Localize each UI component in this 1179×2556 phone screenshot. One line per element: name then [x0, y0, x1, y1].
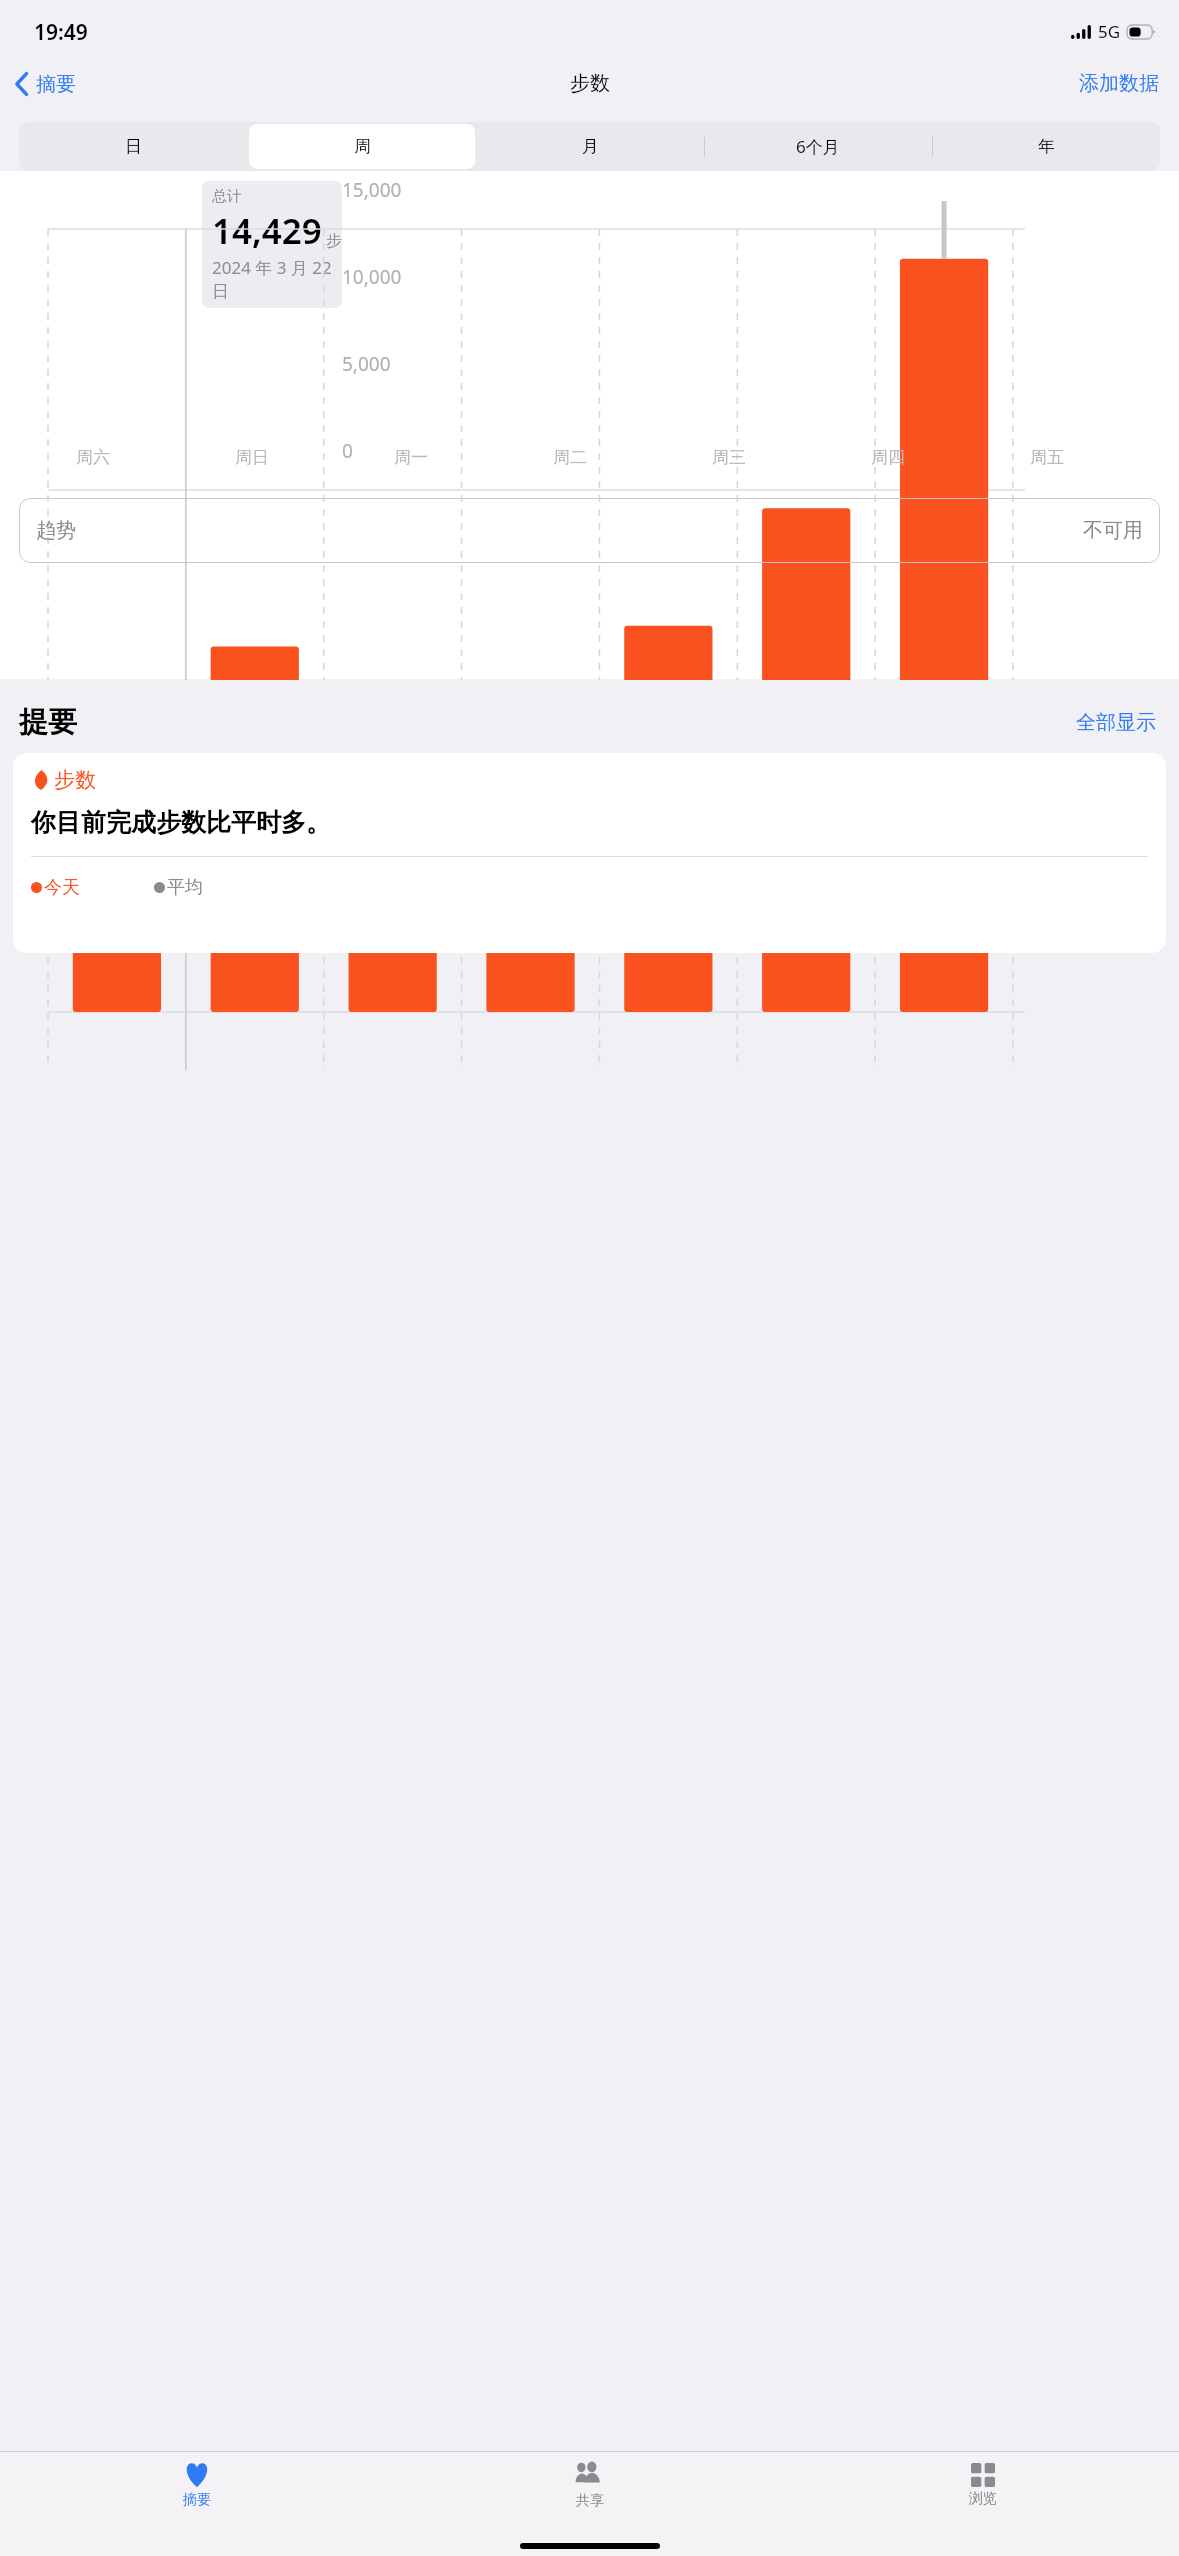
- staticText: 添加数据: [1079, 71, 1159, 96]
- staticText: 5G: [1098, 20, 1121, 43]
- staticText: 周五: [1030, 447, 1064, 468]
- staticText: 你目前完成步数比平时多。: [31, 807, 331, 838]
- staticText: 步: [326, 231, 332, 251]
- staticText: 平均: [167, 876, 203, 899]
- button[interactable]: 共享: [393, 2452, 786, 2518]
- staticText: 0: [342, 438, 353, 464]
- staticText: 2024 年 3 月 22 日: [212, 256, 332, 302]
- staticText: 14,429: [212, 207, 322, 255]
- button[interactable]: 摘要: [0, 67, 86, 101]
- staticText: 周三: [712, 447, 746, 468]
- staticText: 周六: [76, 447, 110, 468]
- button[interactable]: 全部显示: [1072, 706, 1160, 739]
- button[interactable]: 日: [19, 122, 248, 171]
- staticText: 10,000: [342, 264, 402, 290]
- staticText: 日: [125, 136, 142, 157]
- button[interactable]: 年: [932, 122, 1160, 171]
- staticText: 共享: [576, 2492, 604, 2510]
- staticText: 周: [354, 136, 371, 157]
- staticText: 5,000: [342, 351, 391, 377]
- staticText: 摘要: [183, 2491, 211, 2509]
- staticText: 提要: [19, 704, 77, 741]
- staticText: 不可用: [1083, 518, 1143, 543]
- staticText: 全部显示: [1076, 710, 1156, 735]
- staticText: 总计: [212, 187, 242, 206]
- staticText: 15,000: [342, 177, 402, 203]
- button[interactable]: 月: [476, 122, 704, 171]
- button[interactable]: 趋势: [19, 498, 1160, 563]
- staticText: 周二: [553, 447, 587, 468]
- staticText: 19:49: [34, 18, 88, 47]
- button[interactable]: 6个月: [704, 122, 932, 171]
- staticText: 6个月: [796, 135, 840, 158]
- button[interactable]: 周: [248, 122, 476, 171]
- button[interactable]: 步数: [13, 753, 1166, 953]
- staticText: 月: [582, 136, 599, 157]
- staticText: 步数: [570, 71, 610, 96]
- button[interactable]: 摘要: [0, 2452, 393, 2518]
- staticText: 周四: [871, 447, 905, 468]
- staticText: 步数: [54, 767, 96, 793]
- button[interactable]: 浏览: [786, 2452, 1179, 2518]
- staticText: 趋势: [36, 518, 76, 543]
- staticText: 摘要: [36, 72, 76, 97]
- staticText: 周一: [394, 447, 428, 468]
- button[interactable]: 添加数据: [1059, 65, 1179, 102]
- staticText: 年: [1038, 136, 1055, 157]
- staticText: 周日: [235, 447, 269, 468]
- staticText: 今天: [44, 876, 80, 899]
- staticText: 浏览: [969, 2490, 997, 2508]
